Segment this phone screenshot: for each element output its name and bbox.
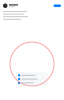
- button[interactable]: [18, 82, 46, 84]
- button[interactable]: [18, 74, 46, 76]
- button[interactable]: [18, 78, 46, 80]
- button[interactable]: New: [53, 4, 61, 7]
